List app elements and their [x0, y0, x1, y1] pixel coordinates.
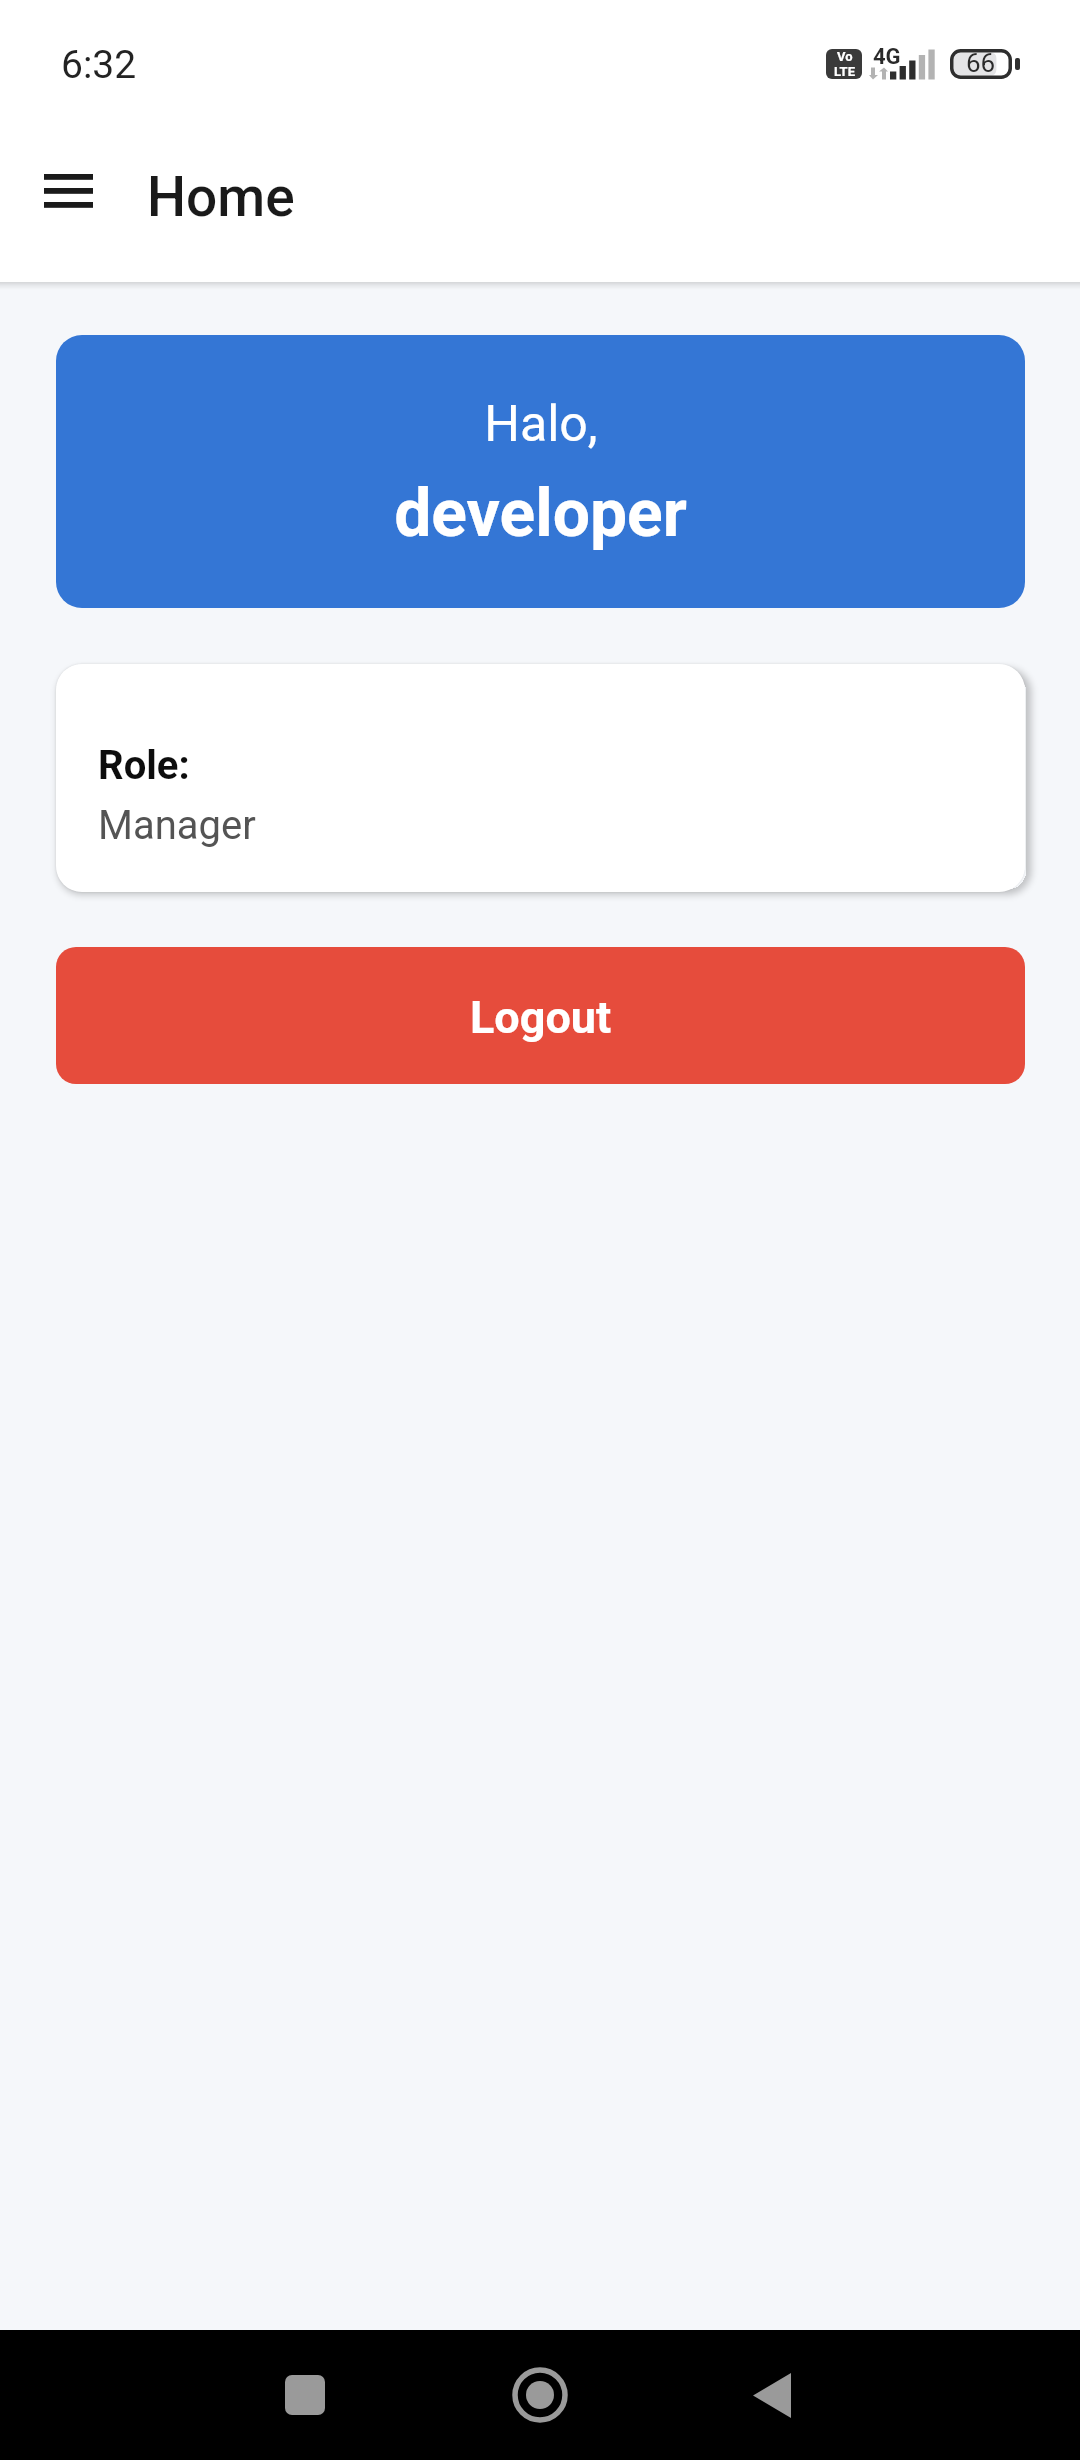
button[interactable]: Recent apps — [253, 2343, 357, 2447]
staticText: 66 — [966, 48, 996, 78]
staticText: 4G — [873, 44, 901, 70]
staticText: developer — [394, 475, 687, 552]
staticText: 6:32 — [61, 42, 137, 88]
staticText: Logout — [470, 991, 612, 1044]
staticText: LTE — [834, 64, 855, 79]
staticText: Vo — [837, 49, 853, 64]
button[interactable]: Role: — [56, 664, 1025, 892]
staticText: Halo, — [484, 395, 598, 454]
button[interactable]: Halo, — [56, 335, 1025, 608]
staticText: Manager — [98, 802, 256, 849]
button[interactable]: Back — [720, 2343, 824, 2447]
button[interactable]: Open navigation menu — [18, 141, 118, 241]
button[interactable]: Logout — [56, 947, 1025, 1084]
button[interactable]: Home — [488, 2343, 592, 2447]
staticText: Role: — [98, 742, 190, 789]
staticText: Home — [147, 165, 295, 229]
